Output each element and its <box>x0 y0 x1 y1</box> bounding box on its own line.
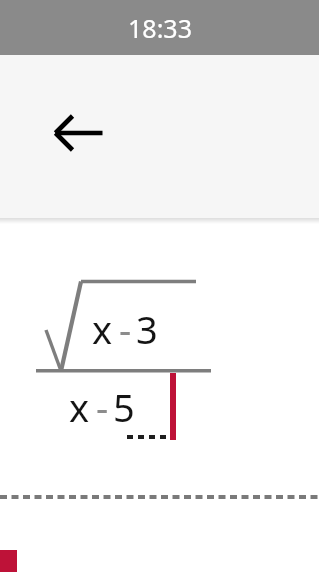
staticText: 5 <box>113 381 135 433</box>
staticText: - <box>96 381 109 433</box>
staticText: x <box>92 303 113 355</box>
staticText: x <box>69 381 90 433</box>
button[interactable]: Back <box>43 105 115 161</box>
staticText: 18:33 <box>128 11 192 45</box>
staticText: 3 <box>136 303 158 355</box>
staticText: - <box>119 303 132 355</box>
